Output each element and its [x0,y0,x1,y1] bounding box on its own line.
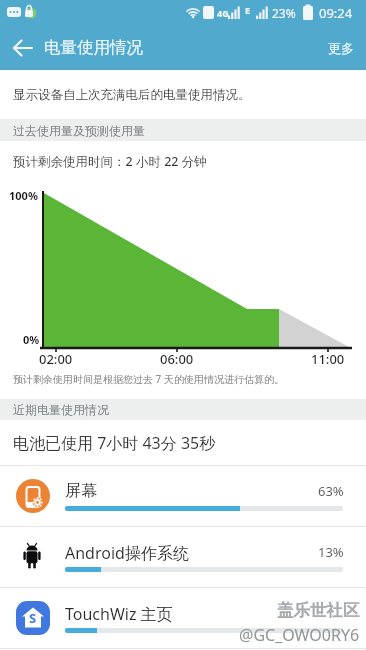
staticText: 63% [318,482,344,500]
staticText: 23% [272,5,296,21]
button[interactable]: Android操作系统 [0,527,366,587]
staticText: TouchWiz 主页 [65,603,173,625]
staticText: 预计剩余使用时间：2 小时 22 分钟 [13,153,207,170]
staticText: 06:00 [160,350,194,368]
staticText: 近期电量使用情况 [13,402,109,417]
staticText: S [29,609,37,627]
button[interactable]: 更多 [316,30,366,66]
staticText: 4G [217,7,229,19]
staticText: 13% [318,543,344,561]
staticText: 盖乐世社区 [277,600,360,621]
staticText: @GC_OWO0RY6 [239,624,360,646]
staticText: 0% [23,332,40,347]
staticText: 过去使用量及预测使用量 [13,123,145,138]
staticText: 09:24 [319,4,353,22]
staticText: 电池已使用 7小时 43分 35秒 [13,432,216,454]
staticText: 屏幕 [65,481,97,501]
staticText: 100% [9,188,38,203]
staticText: 02:00 [39,350,73,368]
button[interactable] [0,25,45,70]
staticText: Android操作系统 [65,542,189,564]
staticText: 更多 [328,40,354,56]
staticText: 11:00 [311,350,345,368]
staticText: 显示设备自上次充满电后的电量使用情况。 [13,87,251,103]
staticText: E [245,4,251,16]
button[interactable]: 屏幕 [0,466,366,526]
staticText: 预计剩余使用时间是根据您过去 7 天的使用情况进行估算的。 [13,372,284,386]
staticText: 电量使用情况 [44,37,143,58]
button[interactable]: S [0,588,366,648]
